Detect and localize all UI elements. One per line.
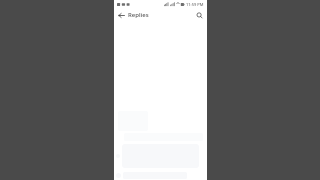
button[interactable]: Back: [114, 8, 128, 22]
staticText: Replies: [128, 11, 149, 19]
button[interactable]: Search: [192, 8, 206, 22]
staticText: 11:59 PM: [186, 2, 204, 7]
